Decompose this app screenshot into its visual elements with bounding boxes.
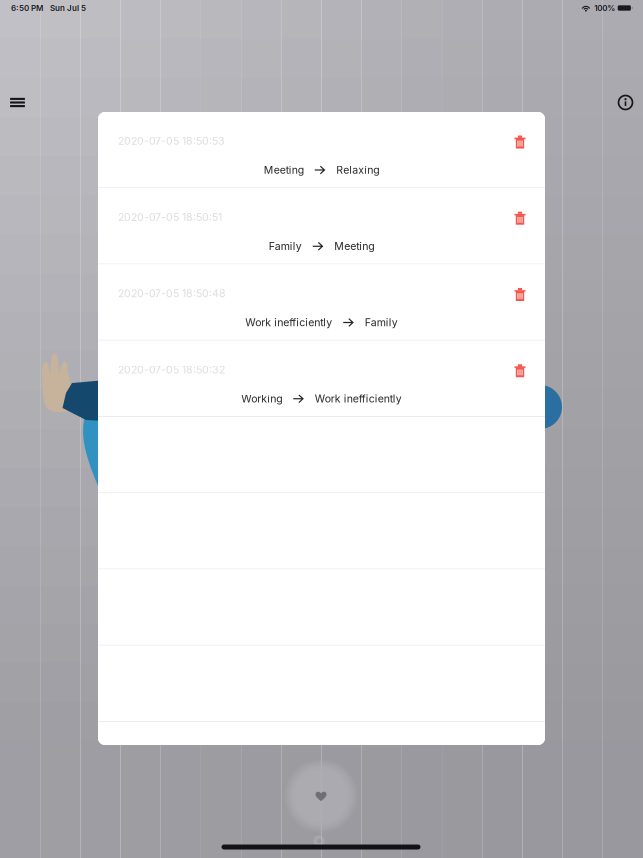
staticText: Meeting (334, 240, 374, 253)
staticText: Work inefficiently (315, 392, 402, 405)
staticText: 2020-07-05 18:50:48 (118, 287, 226, 300)
button[interactable]: Menu (0, 80, 39, 124)
button[interactable]: Info (603, 80, 643, 124)
button[interactable]: Delete entry (503, 128, 537, 156)
staticText: Sun Jul 5 (50, 3, 86, 13)
staticText: 2020-07-05 18:50:32 (118, 363, 225, 376)
staticText: Work inefficiently (245, 316, 332, 329)
staticText: 2020-07-05 18:50:53 (118, 135, 225, 147)
button[interactable]: Delete entry (503, 280, 537, 308)
staticText: Working (241, 392, 282, 405)
button[interactable]: Favourite (281, 756, 361, 836)
staticText: Family (365, 316, 398, 329)
button[interactable]: Delete entry (503, 357, 537, 385)
staticText: Family (269, 240, 302, 253)
button[interactable]: Delete entry (503, 204, 537, 232)
staticText: 100% (594, 3, 615, 13)
staticText: Meeting (264, 164, 304, 176)
staticText: 6:50 PM (11, 3, 43, 13)
staticText: Relaxing (336, 164, 379, 176)
staticText: 2020-07-05 18:50:51 (118, 211, 222, 224)
